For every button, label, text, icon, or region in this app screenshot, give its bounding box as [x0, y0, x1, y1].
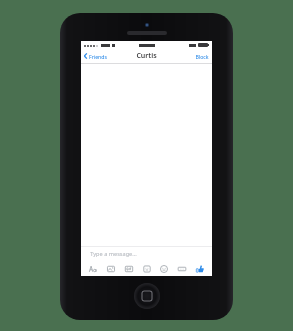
button[interactable]: Text formatting [86, 262, 100, 275]
staticText: Friends [89, 53, 107, 60]
button[interactable]: Send like [193, 262, 207, 275]
button[interactable]: More options [175, 262, 189, 275]
button[interactable]: Friends [81, 49, 111, 63]
button[interactable]: Block [192, 49, 212, 63]
button[interactable]: Send photo [104, 262, 118, 275]
button[interactable]: Send GIF [122, 262, 136, 275]
staticText: Block [195, 53, 209, 60]
staticText: Curtis [136, 51, 157, 61]
button[interactable]: Send sticker [140, 262, 154, 275]
button[interactable]: Emoji [157, 262, 171, 275]
button[interactable]: Home [134, 283, 160, 309]
staticText: Type a message... [90, 250, 137, 258]
button[interactable]: Type a message... [81, 247, 212, 261]
